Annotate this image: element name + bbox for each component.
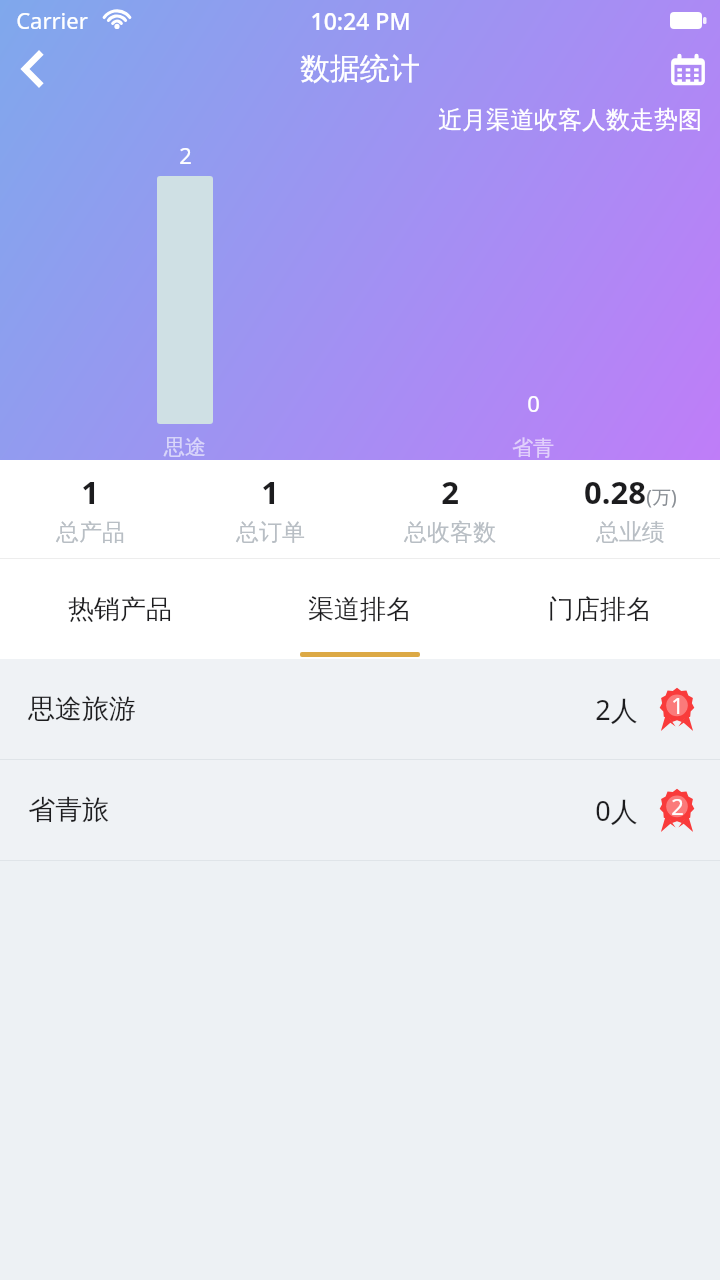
- staticText: 总业绩: [596, 518, 665, 547]
- button[interactable]: 渠道排名: [240, 559, 480, 659]
- staticText: 思途旅游: [157, 434, 213, 470]
- staticText: 省青旅: [505, 435, 561, 489]
- staticText: 10:24 PM: [310, 5, 411, 36]
- staticText: 门店排名: [548, 593, 652, 626]
- staticText: 1: [81, 471, 99, 513]
- button[interactable]: 门店排名: [480, 559, 720, 659]
- staticText: 数据统计: [300, 50, 420, 88]
- staticText: 近月渠道收客人数走势图: [438, 105, 702, 135]
- staticText: 2: [671, 791, 684, 821]
- button[interactable]: Calendar: [656, 38, 720, 100]
- staticText: 2: [179, 140, 192, 170]
- staticText: (万): [646, 484, 677, 510]
- staticText: 0.28: [584, 471, 646, 513]
- staticText: 总产品: [56, 518, 125, 547]
- staticText: 0人: [595, 792, 638, 829]
- staticText: 0: [527, 388, 540, 418]
- staticText: 总订单: [236, 518, 305, 547]
- staticText: 1: [671, 690, 684, 720]
- button[interactable]: 热销产品: [0, 559, 240, 659]
- staticText: 热销产品: [68, 593, 172, 626]
- button[interactable]: 思途旅游: [0, 659, 720, 759]
- staticText: 1: [261, 471, 279, 513]
- staticText: 总收客数: [404, 518, 496, 547]
- staticText: 省青旅: [28, 793, 109, 827]
- staticText: 2人: [595, 691, 638, 728]
- button[interactable]: 2: [360, 471, 540, 547]
- staticText: 2: [441, 471, 459, 513]
- staticText: 思途旅游: [28, 692, 136, 726]
- button[interactable]: 0.28: [540, 471, 720, 547]
- button[interactable]: Back: [0, 38, 64, 100]
- button[interactable]: 1: [0, 471, 180, 547]
- staticText: 渠道排名: [308, 593, 412, 626]
- staticText: Carrier: [16, 5, 88, 35]
- button[interactable]: 省青旅: [0, 760, 720, 860]
- button[interactable]: 1: [180, 471, 360, 547]
